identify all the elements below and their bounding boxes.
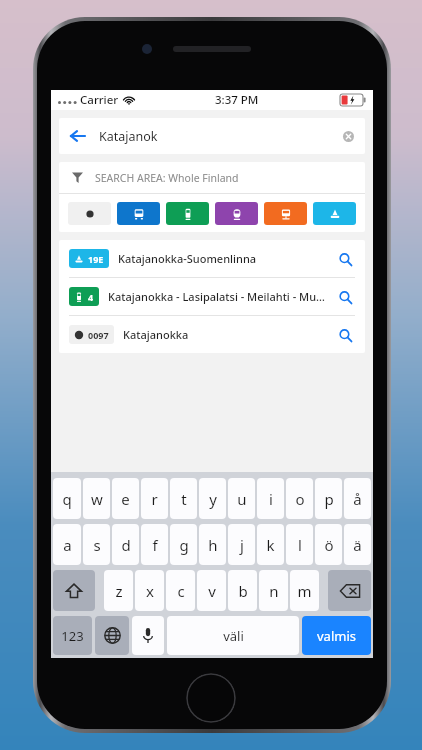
- button[interactable]: valmis: [302, 616, 371, 655]
- button[interactable]: o: [286, 478, 313, 519]
- button[interactable]: 19E: [59, 240, 365, 277]
- staticText: l: [298, 535, 302, 555]
- button[interactable]: s: [83, 524, 110, 565]
- button[interactable]: r: [141, 478, 168, 519]
- button[interactable]: Filter 3: [215, 202, 258, 225]
- button[interactable]: q: [53, 478, 81, 519]
- button[interactable]: y: [199, 478, 226, 519]
- button[interactable]: g: [170, 524, 197, 565]
- staticText: ä: [353, 535, 362, 555]
- staticText: u: [237, 489, 247, 509]
- staticText: i: [269, 489, 273, 509]
- staticText: c: [177, 581, 185, 601]
- button[interactable]: väli: [167, 616, 299, 655]
- button[interactable]: Search Katajanokka: [335, 325, 355, 345]
- button[interactable]: Back: [59, 118, 365, 154]
- button[interactable]: x: [135, 570, 164, 611]
- button[interactable]: å: [344, 478, 371, 519]
- staticText: ö: [324, 535, 334, 555]
- staticText: r: [151, 489, 158, 509]
- button[interactable]: p: [315, 478, 342, 519]
- staticText: f: [152, 535, 158, 555]
- button[interactable]: Clear text: [331, 119, 365, 153]
- staticText: n: [269, 581, 279, 601]
- button[interactable]: 123: [53, 616, 92, 655]
- staticText: Katajanok: [99, 128, 158, 145]
- button[interactable]: 0097: [59, 316, 365, 353]
- button[interactable]: i: [257, 478, 284, 519]
- button[interactable]: c: [166, 570, 195, 611]
- button[interactable]: ä: [344, 524, 371, 565]
- button[interactable]: Filter 5: [313, 202, 356, 225]
- button[interactable]: Search Katajanokka-Suomenlinna: [335, 249, 355, 269]
- button[interactable]: Filter 0: [68, 202, 111, 225]
- button[interactable]: n: [259, 570, 288, 611]
- staticText: 3:37 PM: [215, 92, 259, 108]
- staticText: 0097: [88, 329, 109, 341]
- button[interactable]: d: [112, 524, 139, 565]
- staticText: valmis: [317, 627, 356, 645]
- staticText: g: [179, 535, 189, 555]
- button[interactable]: w: [83, 478, 110, 519]
- staticText: 4: [88, 291, 94, 303]
- staticText: a: [63, 535, 72, 555]
- button[interactable]: Backspace: [328, 570, 371, 611]
- staticText: e: [121, 489, 130, 509]
- staticText: väli: [223, 627, 244, 645]
- button[interactable]: 4: [59, 278, 365, 315]
- button[interactable]: j: [228, 524, 255, 565]
- button[interactable]: h: [199, 524, 226, 565]
- button[interactable]: Dictation: [132, 616, 164, 655]
- button[interactable]: ö: [315, 524, 342, 565]
- staticText: Katajanokka - Lasipalatsi - Meilahti - M…: [108, 289, 329, 304]
- staticText: t: [181, 489, 187, 509]
- button[interactable]: m: [290, 570, 319, 611]
- staticText: p: [324, 489, 334, 509]
- staticText: SEARCH AREA: Whole Finland: [95, 171, 239, 185]
- button[interactable]: SEARCH AREA: Whole Finland: [59, 162, 365, 193]
- staticText: z: [115, 581, 123, 601]
- button[interactable]: t: [170, 478, 197, 519]
- staticText: 123: [61, 627, 84, 645]
- button[interactable]: Filter 1: [117, 202, 160, 225]
- staticText: Katajanokka-Suomenlinna: [118, 251, 329, 266]
- button[interactable]: f: [141, 524, 168, 565]
- staticText: w: [91, 489, 103, 509]
- button[interactable]: Search Katajanokka - Lasipalatsi - Meila…: [335, 287, 355, 307]
- staticText: m: [297, 581, 312, 601]
- staticText: y: [209, 489, 217, 509]
- staticText: Katajanokka: [123, 327, 329, 342]
- staticText: v: [208, 581, 216, 601]
- button[interactable]: k: [257, 524, 284, 565]
- button[interactable]: Shift: [53, 570, 95, 611]
- button[interactable]: Filter 2: [166, 202, 209, 225]
- button[interactable]: Change language: [95, 616, 129, 655]
- staticText: x: [146, 581, 154, 601]
- staticText: Carrier: [80, 92, 119, 108]
- staticText: 19E: [88, 253, 104, 265]
- staticText: j: [240, 535, 244, 555]
- button[interactable]: z: [104, 570, 133, 611]
- staticText: b: [238, 581, 248, 601]
- staticText: o: [295, 489, 305, 509]
- staticText: h: [208, 535, 218, 555]
- staticText: å: [353, 489, 362, 509]
- button[interactable]: Filter 4: [264, 202, 307, 225]
- staticText: s: [93, 535, 101, 555]
- button[interactable]: l: [286, 524, 313, 565]
- button[interactable]: e: [112, 478, 139, 519]
- button[interactable]: u: [228, 478, 255, 519]
- button[interactable]: Back: [59, 118, 95, 154]
- button[interactable]: a: [53, 524, 81, 565]
- staticText: q: [62, 489, 72, 509]
- button[interactable]: b: [228, 570, 257, 611]
- staticText: d: [121, 535, 131, 555]
- staticText: k: [266, 535, 275, 555]
- button[interactable]: v: [197, 570, 226, 611]
